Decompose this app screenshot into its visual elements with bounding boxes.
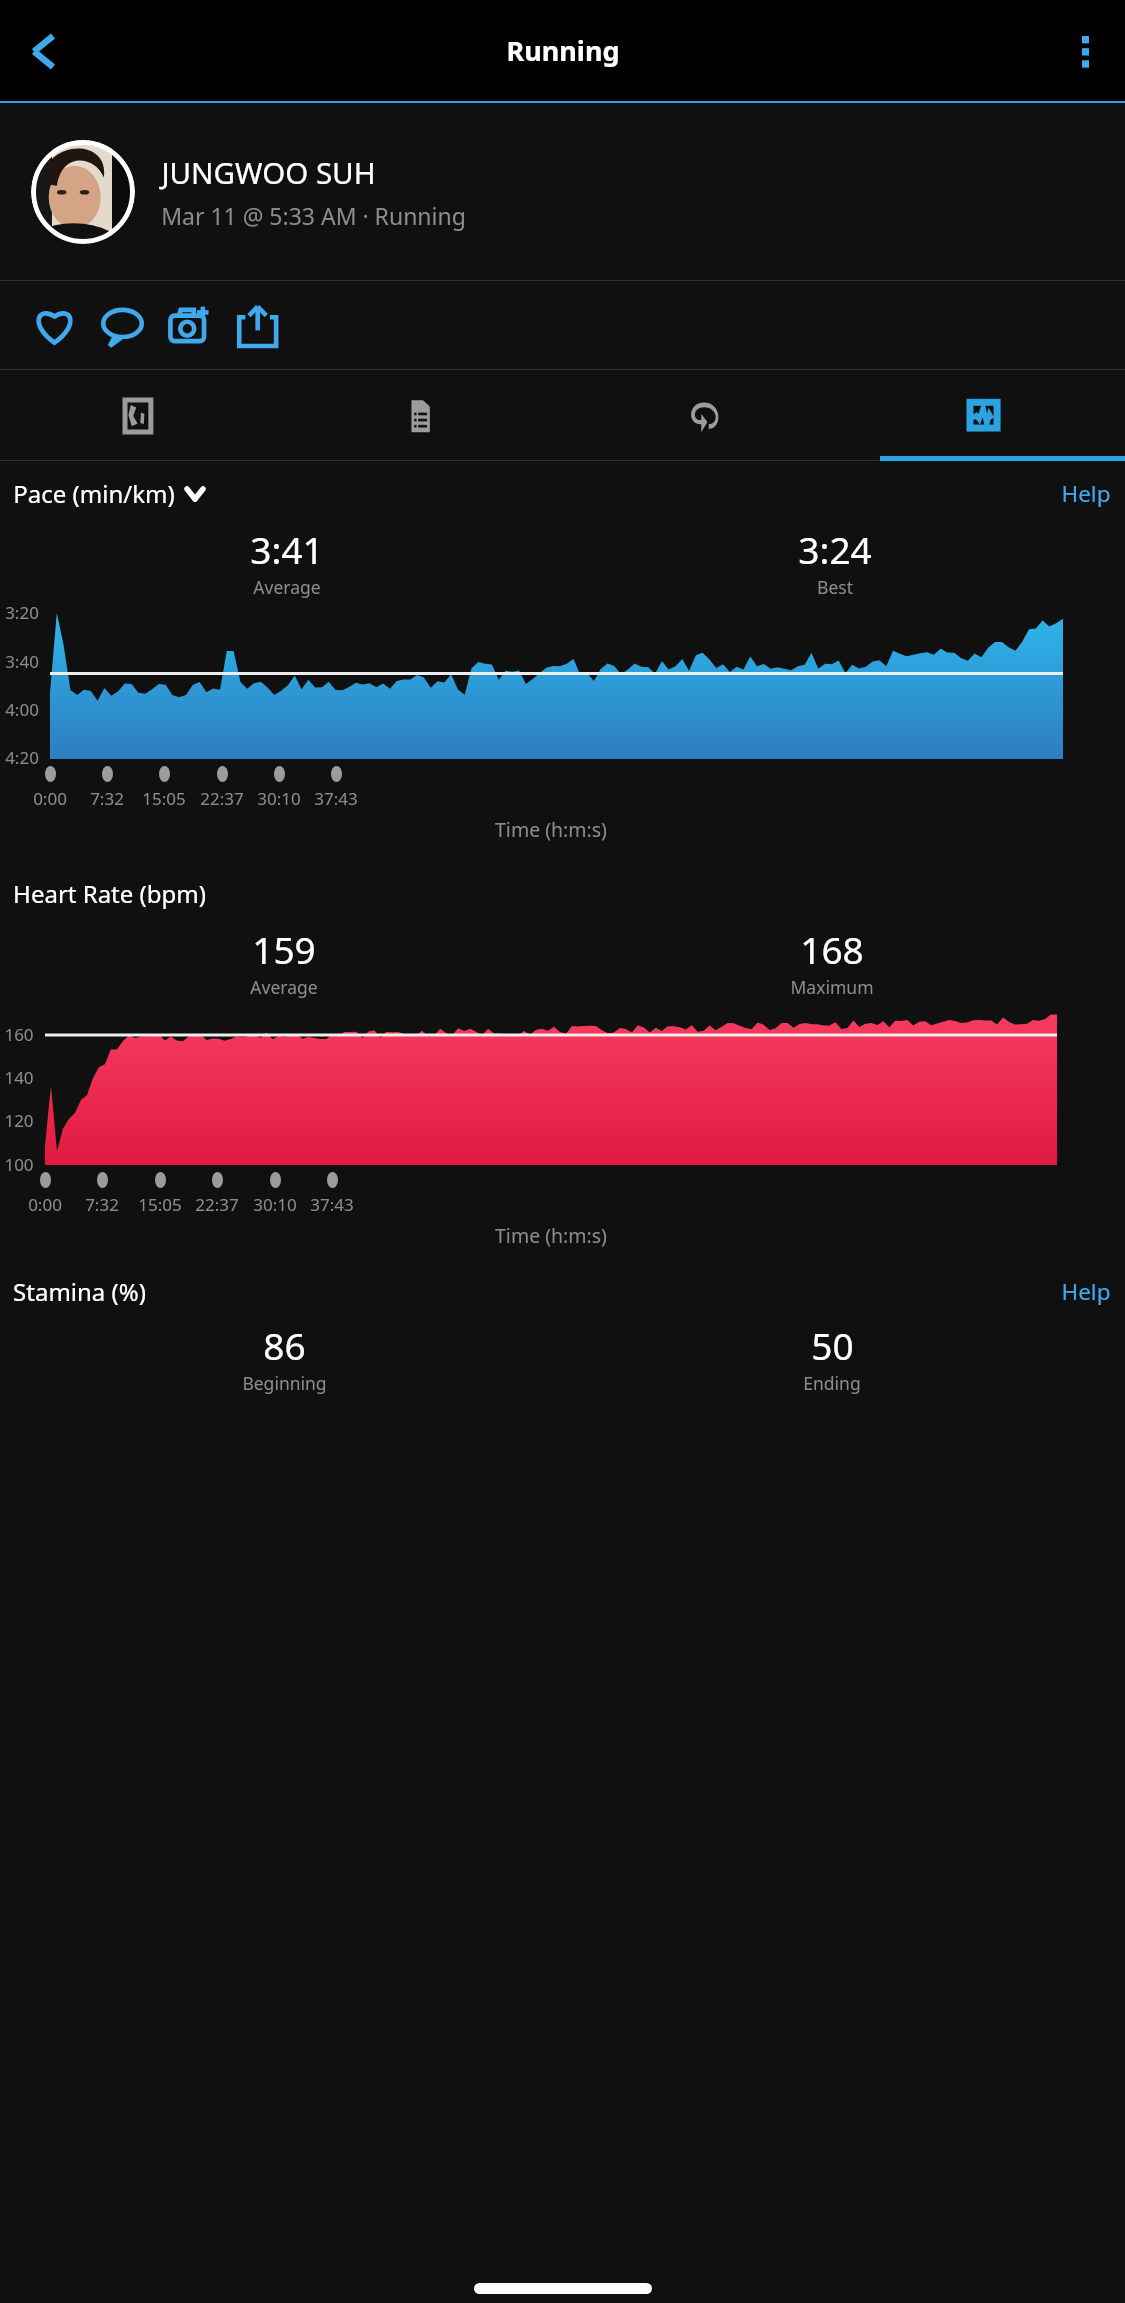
button[interactable]: Details xyxy=(282,370,563,461)
staticText: Help xyxy=(1061,1276,1111,1307)
staticText: 3:24 xyxy=(798,524,872,574)
staticText: Ending xyxy=(803,1371,861,1395)
staticText: Stamina (%) xyxy=(13,1275,146,1308)
staticText: Time (h:m:s) xyxy=(495,1222,607,1249)
staticText: Heart Rate (bpm) xyxy=(13,877,206,910)
staticText: 160 xyxy=(4,1023,34,1046)
button[interactable]: Laps xyxy=(563,370,844,461)
staticText: 168 xyxy=(800,924,864,974)
staticText: 15:05 xyxy=(142,787,186,810)
staticText: 15:05 xyxy=(138,1193,182,1216)
staticText: 37:43 xyxy=(314,787,358,810)
staticText: 0:00 xyxy=(28,1193,62,1216)
staticText: Maximum xyxy=(790,975,874,999)
staticText: 3:20 xyxy=(5,601,39,624)
button[interactable]: Graphs xyxy=(844,370,1125,461)
button[interactable]: Add photo xyxy=(156,291,224,359)
button[interactable]: JUNGWOO SUH xyxy=(0,103,1125,280)
staticText: 7:32 xyxy=(90,787,124,810)
staticText: 3:41 xyxy=(250,524,324,574)
staticText: 0:00 xyxy=(33,787,67,810)
staticText: 30:10 xyxy=(257,787,301,810)
staticText: 86 xyxy=(263,1320,306,1370)
staticText: 140 xyxy=(4,1066,34,1089)
staticText: Average xyxy=(250,975,318,999)
button[interactable]: Map xyxy=(0,370,282,461)
staticText: 100 xyxy=(4,1153,34,1176)
staticText: Pace (min/km) xyxy=(13,477,175,510)
staticText: Best xyxy=(817,575,853,599)
button[interactable]: Stamina (%) xyxy=(13,1275,146,1308)
button[interactable]: Comment xyxy=(88,291,156,359)
button[interactable]: Pace (min/km) xyxy=(13,477,205,510)
button[interactable]: More options xyxy=(1059,25,1111,77)
staticText: 30:10 xyxy=(253,1193,297,1216)
button[interactable]: Share xyxy=(224,291,292,359)
staticText: 37:43 xyxy=(310,1193,354,1216)
staticText: 4:20 xyxy=(5,746,39,769)
staticText: Average xyxy=(253,575,321,599)
staticText: 3:40 xyxy=(5,650,39,673)
staticText: Beginning xyxy=(242,1371,327,1395)
staticText: Time (h:m:s) xyxy=(495,816,607,843)
button[interactable]: Help xyxy=(1061,1276,1111,1307)
staticText: 22:37 xyxy=(200,787,244,810)
staticText: 7:32 xyxy=(85,1193,119,1216)
staticText: 50 xyxy=(811,1320,854,1370)
staticText: 120 xyxy=(4,1109,34,1132)
staticText: Mar 11 @ 5:33 AM · Running xyxy=(161,200,466,231)
staticText: Running xyxy=(506,32,620,69)
staticText: JUNGWOO SUH xyxy=(161,152,376,192)
button[interactable]: Back xyxy=(16,25,68,77)
staticText: 159 xyxy=(252,924,316,974)
staticText: 4:00 xyxy=(5,698,39,721)
button[interactable]: Heart Rate (bpm) xyxy=(13,877,206,910)
staticText: Help xyxy=(1061,478,1111,509)
button[interactable]: Help xyxy=(1061,478,1111,509)
staticText: 22:37 xyxy=(195,1193,239,1216)
button[interactable]: Like xyxy=(20,291,88,359)
